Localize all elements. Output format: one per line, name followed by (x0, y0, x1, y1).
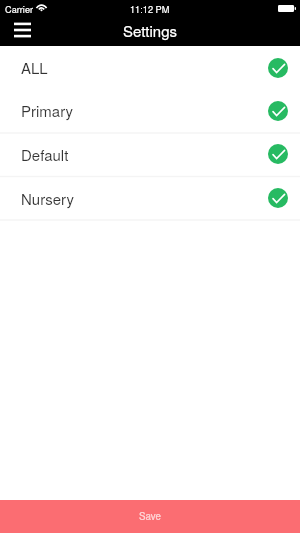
button[interactable]: Nursery (0, 176, 300, 220)
staticText: ALL (21, 57, 48, 78)
button[interactable]: Save (0, 500, 300, 533)
staticText: Save (139, 509, 161, 523)
staticText: Carrier (5, 2, 34, 15)
staticText: Primary (21, 100, 74, 121)
staticText: Default (21, 144, 69, 165)
staticText: Nursery (21, 188, 74, 209)
button[interactable]: Default (0, 132, 300, 176)
staticText: 11:12 PM (130, 2, 170, 15)
button[interactable]: Primary (0, 89, 300, 132)
button[interactable]: Menu (0, 17, 46, 46)
staticText: Settings (123, 20, 178, 41)
button[interactable]: ALL (0, 46, 300, 89)
